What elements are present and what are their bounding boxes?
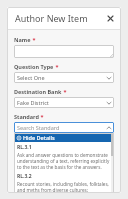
staticText: Recount stories, including fables, folkt… [17,181,111,193]
staticText: Question Type [14,63,54,70]
button[interactable]: Select One [14,72,114,83]
staticText: Hide Details [23,134,55,141]
button[interactable]: Hide Details [14,133,114,142]
staticText: * [62,88,67,95]
staticText: Author New Item [15,12,88,24]
staticText: Name [14,36,31,43]
staticText: Ask and answer questions to demonstrate … [17,152,111,170]
staticText: * [31,36,36,43]
staticText: RL.3.1 [17,144,32,151]
button[interactable] [14,45,114,58]
staticText: Destination Bank [14,88,62,95]
staticText: * [39,113,44,120]
staticText: Standard [14,113,39,120]
staticText: Search Standard [17,124,60,131]
staticText: Fake District [17,99,49,106]
button[interactable]: Search Standard [14,122,114,133]
staticText: RL.3.2 [17,173,32,180]
button[interactable]: Close [104,12,116,24]
staticText: * [54,63,59,70]
staticText: Select One [17,74,45,81]
button[interactable]: Fake District [14,97,114,108]
